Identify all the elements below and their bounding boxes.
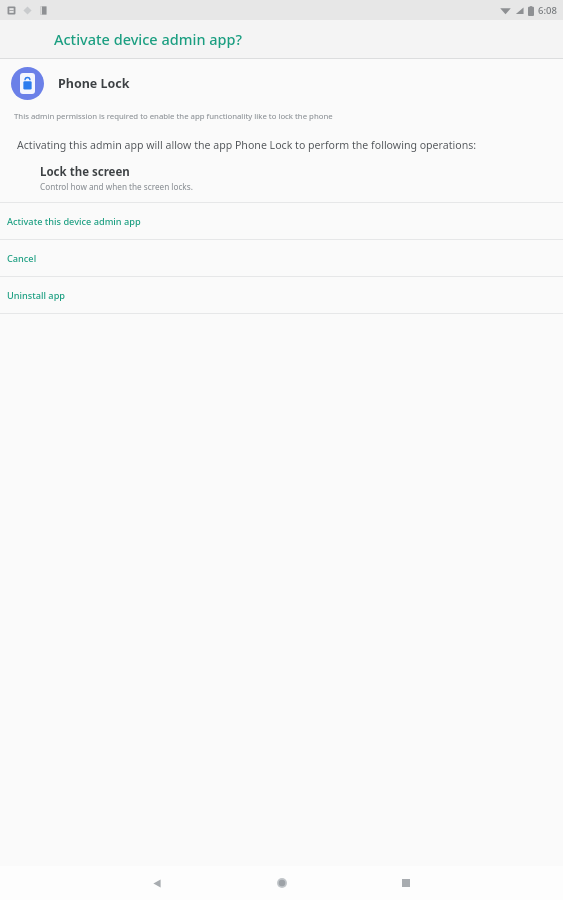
- button[interactable]: Activate this device admin app: [0, 203, 563, 239]
- staticText: This admin permission is required to ena…: [14, 111, 549, 122]
- button[interactable]: Home: [265, 866, 299, 900]
- staticText: 6:08: [538, 4, 557, 17]
- staticText: Control how and when the screen locks.: [40, 181, 193, 192]
- staticText: Phone Lock: [58, 75, 130, 92]
- staticText: Activate device admin app?: [54, 29, 243, 49]
- button[interactable]: Uninstall app: [0, 277, 563, 313]
- button[interactable]: Cancel: [0, 240, 563, 276]
- staticText: Uninstall app: [7, 289, 66, 302]
- button[interactable]: Recent apps: [389, 866, 423, 900]
- button[interactable]: Back: [140, 866, 174, 900]
- staticText: Activate this device admin app: [7, 215, 141, 228]
- staticText: Activating this admin app will allow the…: [17, 138, 553, 152]
- staticText: Cancel: [7, 252, 37, 265]
- staticText: Lock the screen: [40, 164, 130, 180]
